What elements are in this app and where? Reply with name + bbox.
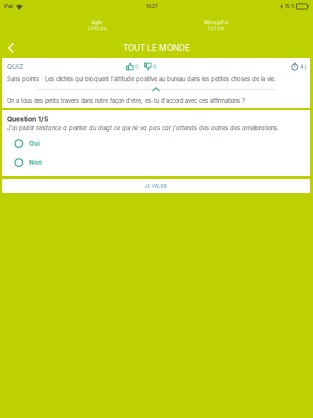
staticText: Agile: [91, 20, 102, 25]
staticText: 15 %: [285, 4, 295, 9]
staticText: 5940 pts: [87, 26, 106, 31]
button[interactable]: Collapse: [2, 83, 310, 96]
staticText: 0: [153, 63, 156, 70]
staticText: TOUT LE MONDE: [123, 43, 190, 53]
staticText: MänageToi: [203, 20, 228, 25]
staticText: Sans points · Les clichés qui bloquent l…: [7, 75, 276, 83]
staticText: On a tous des petits travers dans notre …: [7, 98, 245, 104]
staticText: 4 j: [300, 63, 306, 70]
staticText: J'ai plutôt tendance à pointer du doigt …: [7, 125, 279, 132]
button[interactable]: Back: [0, 38, 22, 58]
button[interactable]: Like: [126, 63, 138, 70]
staticText: 520 pts: [208, 26, 224, 31]
staticText: QUIZ: [7, 62, 23, 71]
staticText: Non: [29, 159, 42, 166]
button[interactable]: Non: [2, 153, 310, 172]
staticText: JE VALIDE: [144, 183, 167, 189]
button[interactable]: JE VALIDE: [2, 179, 310, 193]
staticText: iPad: [4, 4, 13, 9]
button[interactable]: Oui: [2, 134, 310, 153]
button[interactable]: Dislike: [144, 63, 156, 70]
staticText: 10:27: [146, 4, 157, 9]
staticText: Oui: [29, 140, 40, 147]
staticText: Question 1/5: [7, 115, 48, 123]
staticText: 0: [135, 63, 138, 70]
